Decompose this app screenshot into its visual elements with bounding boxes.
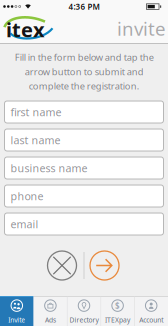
staticText: Invite xyxy=(8,316,25,324)
staticText: Ads xyxy=(45,316,56,324)
button[interactable]: Invite xyxy=(0,296,34,326)
staticText: invite xyxy=(117,16,166,41)
staticText: email xyxy=(10,217,38,231)
button[interactable]: Account xyxy=(134,296,168,326)
button[interactable]: business name xyxy=(4,157,163,179)
staticText: itex xyxy=(6,16,45,43)
staticText: business name xyxy=(10,161,87,175)
button[interactable]: $ xyxy=(101,296,134,326)
staticText: first name xyxy=(10,105,61,119)
button[interactable]: email xyxy=(4,213,163,235)
staticText: last name xyxy=(10,133,60,147)
staticText: 4:36 PM xyxy=(68,1,99,12)
staticText: Directory xyxy=(69,316,98,324)
staticText: $ xyxy=(115,300,120,311)
button[interactable]: last name xyxy=(4,129,163,151)
staticText: ITEXpay xyxy=(105,316,130,324)
button[interactable]: Submit xyxy=(90,251,119,280)
staticText: phone xyxy=(10,189,43,203)
button[interactable]: Ads xyxy=(34,296,67,326)
staticText: Account xyxy=(139,316,163,324)
button[interactable]: Cancel xyxy=(47,251,76,280)
staticText: Fill in the form below and tap the arrow… xyxy=(14,51,153,92)
button[interactable]: first name xyxy=(4,101,163,123)
button[interactable]: phone xyxy=(4,185,163,207)
button[interactable]: Directory xyxy=(67,296,101,326)
